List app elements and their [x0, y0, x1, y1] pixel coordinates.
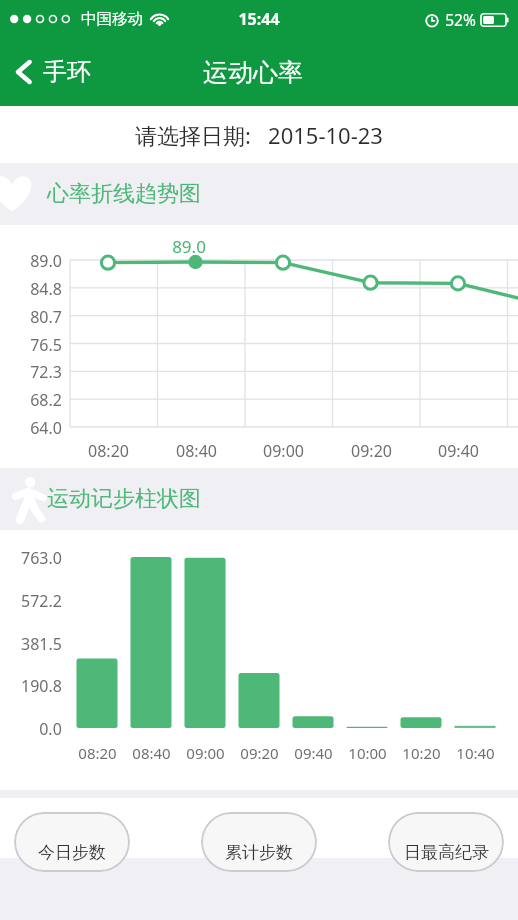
staticText: 日最高纪录	[404, 842, 489, 863]
staticText: 09:40	[294, 743, 333, 763]
staticText: 请选择日期:	[135, 120, 251, 150]
staticText: 09:20	[240, 743, 279, 763]
staticText: 累计步数	[225, 842, 293, 863]
button[interactable]: 手环	[0, 49, 105, 95]
staticText: 68.2	[30, 389, 62, 411]
staticText: 572.2	[21, 590, 62, 612]
staticText: 运动记步柱状图	[47, 485, 201, 513]
staticText: 10:20	[402, 743, 441, 763]
staticText: 今日步数	[38, 842, 106, 863]
staticText: 08:20	[78, 743, 117, 763]
button[interactable]: 累计步数	[201, 812, 317, 872]
staticText: 15:44	[238, 8, 280, 30]
staticText: 80.7	[30, 306, 62, 328]
staticText: 08:20	[88, 440, 129, 462]
staticText: 190.8	[21, 675, 62, 697]
staticText: 76.5	[30, 334, 62, 356]
staticText: 52%	[445, 9, 476, 30]
staticText: 10:40	[456, 743, 495, 763]
staticText: 89.0	[30, 250, 62, 272]
staticText: 89.0	[172, 235, 206, 258]
staticText: 09:40	[438, 440, 479, 462]
staticText: 运动心率	[203, 57, 303, 88]
staticText: 心率折线趋势图	[47, 180, 201, 208]
staticText: 84.8	[30, 278, 62, 300]
staticText: 09:20	[351, 440, 392, 462]
staticText: 0.0	[39, 718, 62, 740]
staticText: 09:00	[186, 743, 225, 763]
staticText: 381.5	[21, 633, 62, 655]
staticText: 10:00	[348, 743, 387, 763]
staticText: 763.0	[21, 547, 62, 569]
staticText: 64.0	[30, 417, 62, 439]
button[interactable]: 请选择日期:	[0, 106, 518, 163]
button[interactable]: 今日步数	[14, 812, 130, 872]
staticText: 2015-10-23	[268, 120, 383, 150]
staticText: 72.3	[30, 361, 62, 383]
staticText: 中国移动	[81, 9, 143, 29]
staticText: 手环	[43, 57, 91, 87]
staticText: 08:40	[176, 440, 217, 462]
staticText: 09:00	[263, 440, 304, 462]
staticText: 08:40	[132, 743, 171, 763]
button[interactable]: 日最高纪录	[388, 812, 504, 872]
